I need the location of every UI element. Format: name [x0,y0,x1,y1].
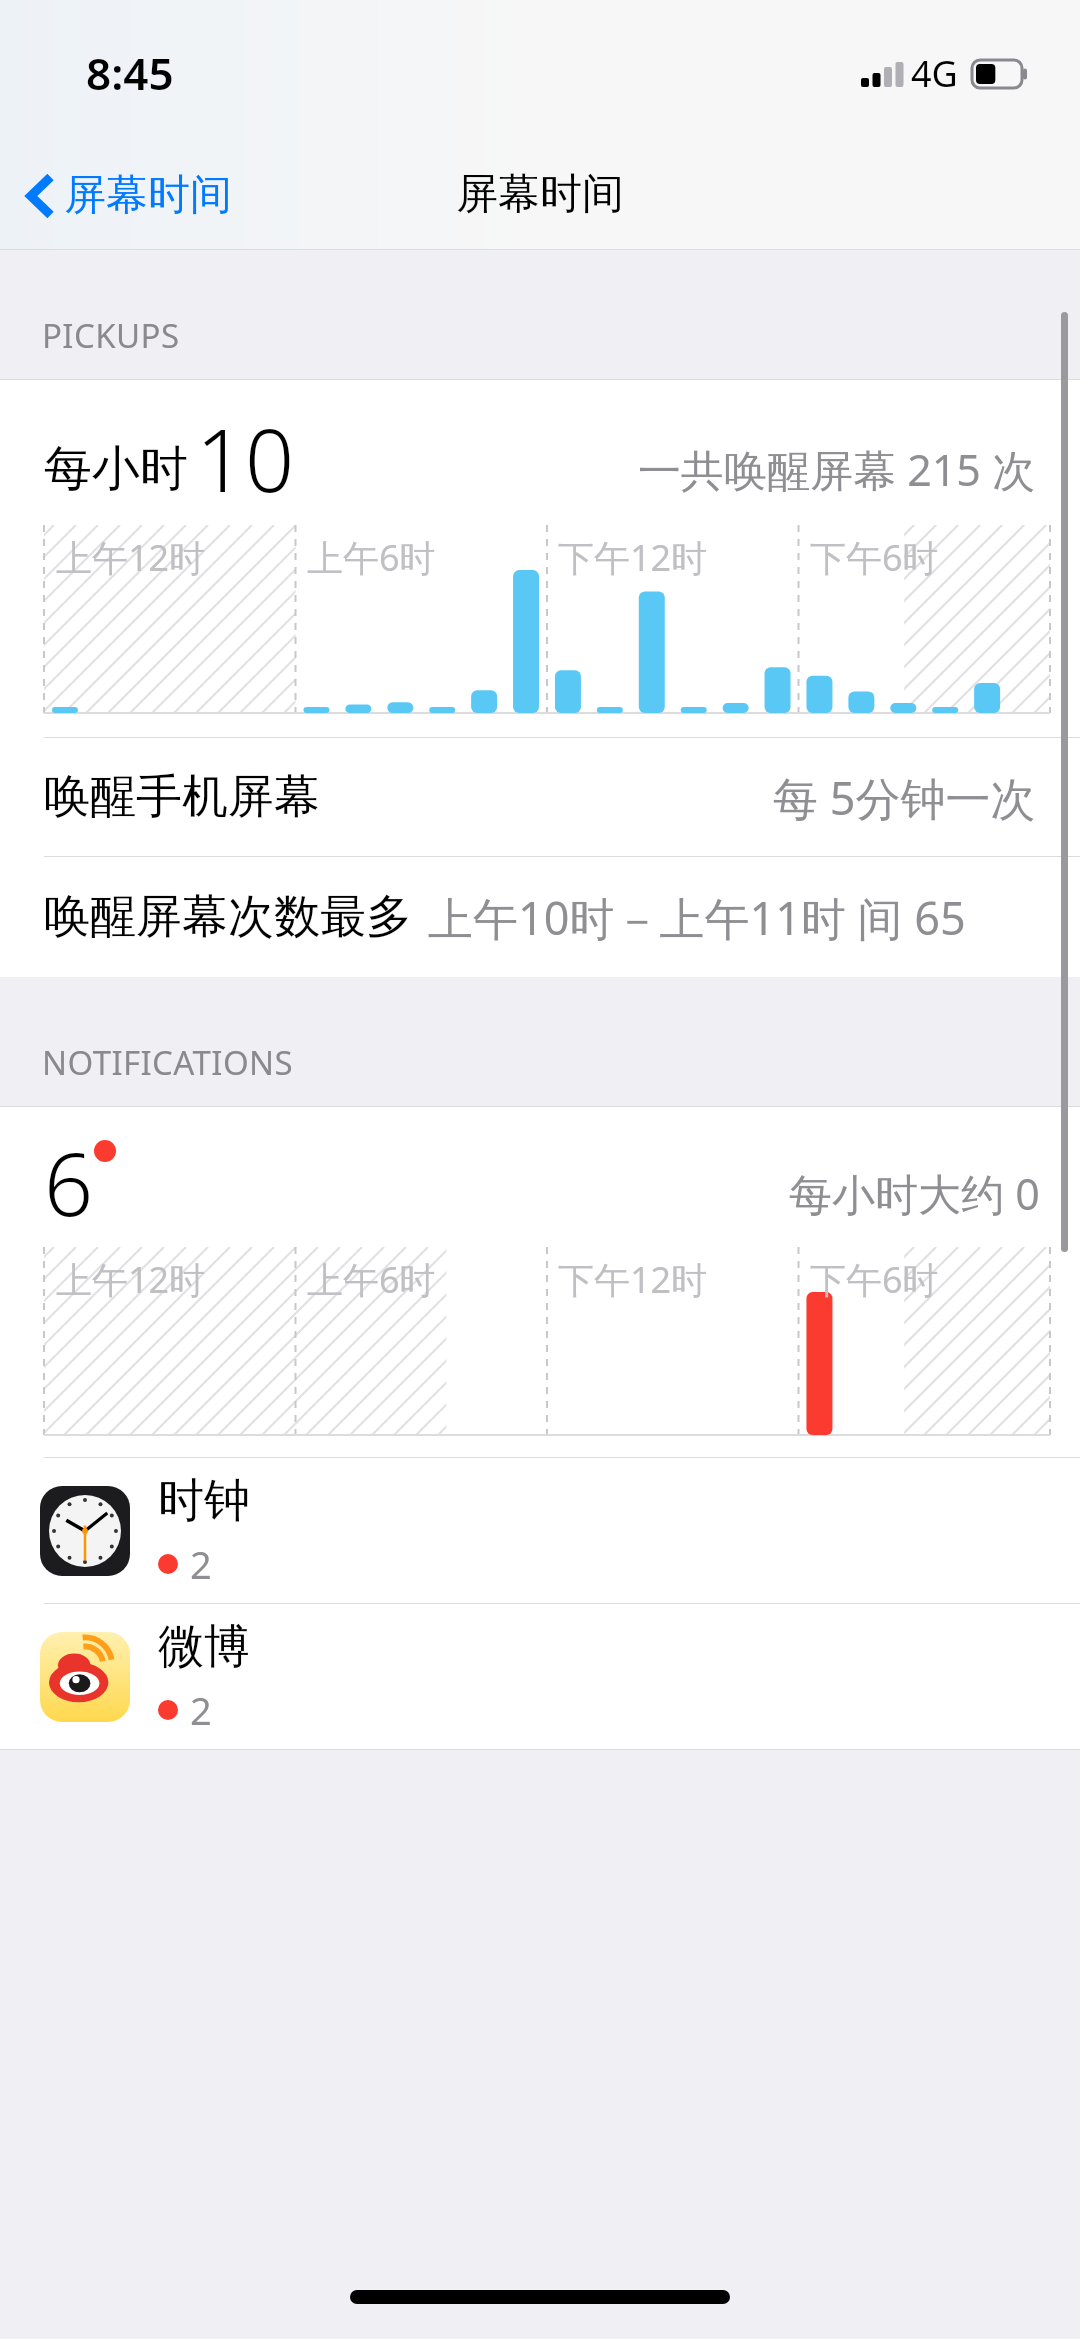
staticText: 下午6时 [810,533,939,582]
staticText: 2 [190,1684,212,1736]
staticText: 上午12时 [56,1255,206,1304]
button[interactable]: 屏幕时间 [0,161,248,230]
staticText: 屏幕时间 [64,169,232,222]
staticText: 下午12时 [558,1255,708,1304]
staticText: 上午6时 [307,533,436,582]
staticText: NOTIFICATIONS [42,1040,294,1085]
staticText: 每小时大约 0 [789,1164,1040,1223]
staticText: 唤醒屏幕次数最多 [44,888,412,946]
staticText: 上午6时 [307,1255,436,1304]
staticText: 一共唤醒屏幕 215 次 [638,440,1036,499]
staticText: 上午12时 [56,533,206,582]
staticText: 4G [911,49,958,98]
staticText: 上午10时－上午11时 间 65 [428,887,966,948]
staticText: 下午6时 [810,1255,939,1304]
staticText: 时钟 [158,1472,250,1530]
staticText: 2 [190,1538,212,1590]
button[interactable]: Weibo app [0,1604,1080,1749]
staticText: 唤醒手机屏幕 [44,768,320,826]
staticText: 下午12时 [558,533,708,582]
staticText: 10 [196,400,295,517]
staticText: 每 5分钟一次 [773,767,1036,828]
staticText: 每小时 [44,439,188,499]
button[interactable]: 唤醒屏幕次数最多 [0,857,1080,977]
staticText: 6 [44,1124,94,1241]
button[interactable]: 唤醒手机屏幕 [0,738,1080,856]
staticText: 屏幕时间 [456,168,624,221]
other: Clock app [40,1486,130,1576]
other: Weibo app [40,1632,130,1722]
staticText: PICKUPS [42,313,180,358]
button[interactable]: Clock app [0,1458,1080,1603]
staticText: 8:45 [86,43,174,103]
staticText: 微博 [158,1618,250,1676]
